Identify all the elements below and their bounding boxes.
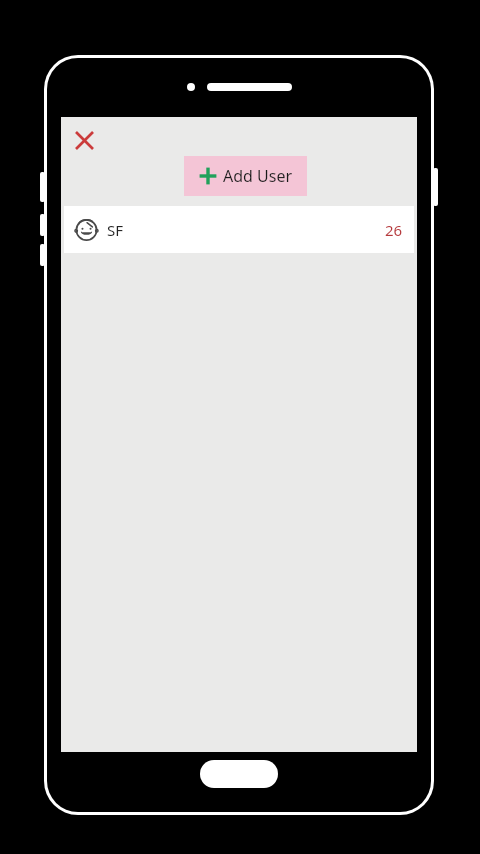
button[interactable]: Add User bbox=[184, 156, 307, 196]
button[interactable]: Close bbox=[68, 124, 100, 156]
button[interactable]: SF bbox=[64, 206, 414, 253]
staticText: 26 bbox=[385, 220, 403, 240]
staticText: Add User bbox=[223, 165, 293, 187]
other: Home bbox=[200, 760, 278, 788]
staticText: SF bbox=[107, 220, 124, 240]
